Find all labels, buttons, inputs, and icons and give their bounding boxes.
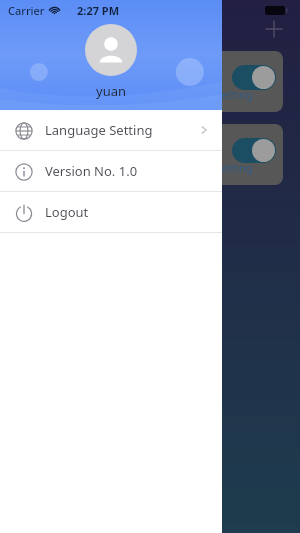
- staticText: yuan: [96, 82, 126, 100]
- button[interactable]: Language Setting: [0, 110, 222, 150]
- button[interactable]: [232, 138, 276, 163]
- button[interactable]: Add: [262, 17, 286, 41]
- button[interactable]: Profile photo: [85, 24, 137, 76]
- staticText: Logout: [45, 203, 89, 221]
- button[interactable]: [232, 65, 276, 90]
- button[interactable]: Setting: [212, 51, 283, 112]
- button[interactable]: Version No. 1.0: [0, 151, 222, 191]
- button[interactable]: Setting: [212, 124, 283, 185]
- staticText: Language Setting: [45, 121, 153, 139]
- staticText: Setting: [216, 160, 253, 175]
- staticText: Carrier: [8, 3, 45, 18]
- staticText: 2:27 PM: [77, 3, 120, 18]
- staticText: Setting: [216, 87, 253, 102]
- button[interactable]: Logout: [0, 192, 222, 232]
- staticText: Version No. 1.0: [45, 162, 138, 180]
